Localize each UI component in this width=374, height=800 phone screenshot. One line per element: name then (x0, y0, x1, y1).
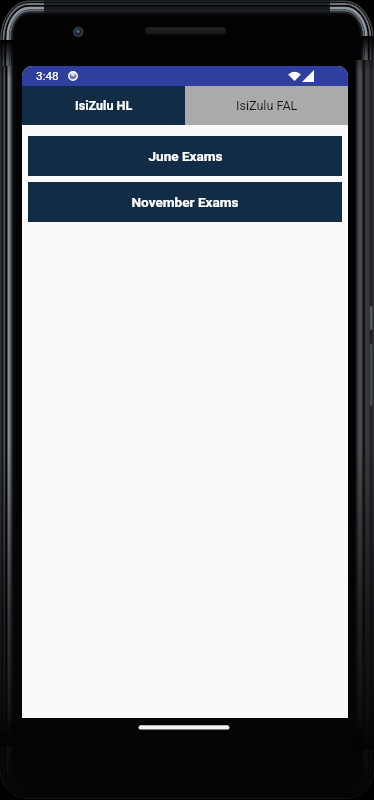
staticText: IsiZulu HL (75, 98, 133, 113)
button[interactable]: IsiZulu HL (22, 86, 185, 125)
button[interactable]: November Exams (28, 182, 342, 222)
staticText: November Exams (131, 194, 239, 210)
button[interactable]: IsiZulu FAL (185, 86, 348, 125)
staticText: June Exams (148, 148, 223, 164)
staticText: 3:48 (36, 69, 59, 83)
other: Wi-Fi (288, 71, 301, 81)
staticText: IsiZulu FAL (236, 98, 298, 113)
button[interactable]: June Exams (28, 136, 342, 176)
other: Notification (68, 71, 78, 81)
